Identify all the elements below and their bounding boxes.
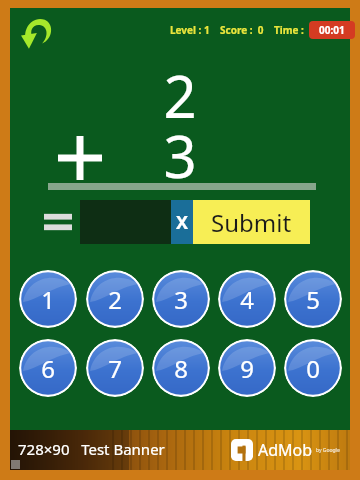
staticText: 1 xyxy=(41,283,55,316)
staticText: 8 xyxy=(174,352,188,385)
staticText: Score : 0 xyxy=(220,23,264,37)
button[interactable]: 2 xyxy=(86,270,144,328)
staticText: 2 xyxy=(163,56,197,135)
staticText: 3 xyxy=(163,116,197,195)
staticText: 0 xyxy=(306,352,320,385)
button[interactable]: 3 xyxy=(152,270,210,328)
button[interactable]: 5 xyxy=(284,270,342,328)
button[interactable]: 9 xyxy=(218,339,276,397)
staticText: by Google xyxy=(316,447,340,454)
button[interactable]: 0 xyxy=(284,339,342,397)
button[interactable]: 4 xyxy=(218,270,276,328)
staticText: Time : xyxy=(274,23,304,37)
button[interactable]: 6 xyxy=(19,339,77,397)
staticText: 3 xyxy=(174,283,188,316)
staticText: 4 xyxy=(240,283,254,316)
button[interactable]: X xyxy=(171,200,193,244)
button[interactable]: 728×90 Test Banner xyxy=(10,430,350,470)
staticText: 6 xyxy=(41,352,55,385)
staticText: AdMob xyxy=(258,439,313,461)
staticText: 2 xyxy=(108,283,122,316)
staticText: 728×90 Test Banner xyxy=(18,439,165,459)
staticText: Level : 1 xyxy=(170,23,210,37)
button[interactable]: 7 xyxy=(86,339,144,397)
button[interactable]: 8 xyxy=(152,339,210,397)
staticText: 00:01 xyxy=(319,23,345,37)
staticText: Submit xyxy=(211,206,292,239)
staticText: 7 xyxy=(108,352,122,385)
staticText: 5 xyxy=(306,283,320,316)
staticText: 9 xyxy=(240,352,254,385)
staticText: X xyxy=(176,210,189,235)
button[interactable]: Submit xyxy=(193,200,310,244)
button[interactable]: Back xyxy=(14,10,58,54)
button[interactable]: 1 xyxy=(19,270,77,328)
